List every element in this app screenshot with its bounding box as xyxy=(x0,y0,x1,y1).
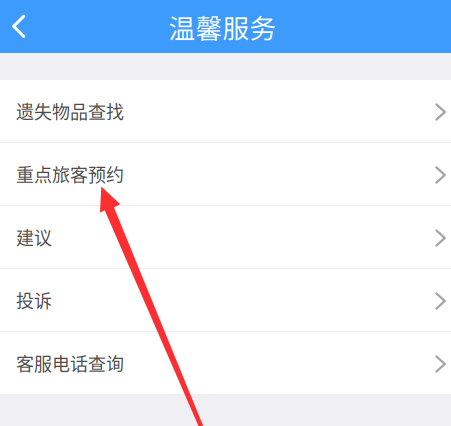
button[interactable]: 客服电话查询 xyxy=(0,332,451,394)
button[interactable]: 重点旅客预约 xyxy=(0,143,451,205)
button[interactable]: Back xyxy=(0,0,39,53)
staticText: 客服电话查询 xyxy=(16,350,124,376)
staticText: 重点旅客预约 xyxy=(16,161,124,187)
button[interactable]: 投诉 xyxy=(0,269,451,331)
staticText: 投诉 xyxy=(16,287,52,313)
button[interactable]: 建议 xyxy=(0,206,451,268)
button[interactable]: 遗失物品查找 xyxy=(0,80,451,142)
staticText: 温馨服务 xyxy=(168,7,276,46)
staticText: 遗失物品查找 xyxy=(16,98,124,124)
staticText: 建议 xyxy=(16,224,52,250)
